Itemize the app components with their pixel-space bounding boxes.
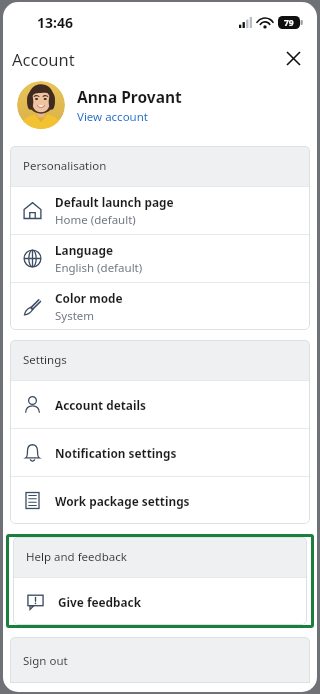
staticText: English (default) [55, 260, 143, 276]
staticText: System [55, 308, 95, 324]
button[interactable]: Default launch page [10, 187, 310, 234]
staticText: 13:46 [37, 13, 73, 32]
staticText: Help and feedback [26, 549, 127, 565]
button[interactable]: Help and feedback [13, 537, 307, 625]
button[interactable]: Account details [10, 381, 310, 428]
staticText: Personalisation [23, 158, 107, 174]
staticText: Account [12, 48, 75, 70]
staticText: Home (default) [55, 212, 136, 228]
staticText: Work package settings [55, 493, 190, 509]
staticText: Anna Provant [77, 86, 182, 107]
button[interactable]: Anna Provant [3, 75, 317, 135]
button[interactable]: Work package settings [10, 477, 310, 524]
button[interactable]: Give feedback [13, 578, 307, 625]
staticText: Language [55, 242, 114, 258]
button[interactable]: View account [77, 109, 148, 125]
staticText: Color mode [55, 290, 123, 306]
button[interactable]: Color mode [10, 283, 310, 330]
staticText: Settings [23, 352, 67, 368]
staticText: 79 [284, 17, 294, 29]
button[interactable]: Notification settings [10, 429, 310, 476]
button[interactable]: Close [275, 42, 311, 75]
staticText: Sign out [23, 653, 68, 669]
button[interactable]: Sign out [10, 637, 310, 683]
button[interactable]: Language [10, 235, 310, 282]
staticText: Give feedback [58, 594, 141, 610]
staticText: Account details [55, 397, 146, 413]
staticText: Notification settings [55, 445, 177, 461]
staticText: Default launch page [55, 194, 174, 210]
